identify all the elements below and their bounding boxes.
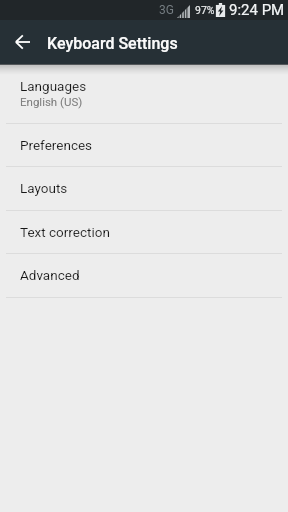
staticText: English (US) [20,95,83,108]
staticText: 9:24 PM [229,1,285,19]
staticText: Languages [20,78,87,94]
button[interactable]: Text correction [0,211,288,254]
button[interactable]: Back [1,20,43,64]
staticText: 97% [195,4,215,16]
staticText: Advanced [20,267,80,283]
staticText: 3G [159,3,174,17]
button[interactable]: Preferences [0,124,288,167]
button[interactable]: Languages [0,64,288,124]
staticText: Preferences [20,137,93,153]
staticText: Layouts [20,180,68,196]
staticText: Keyboard Settings [47,34,178,53]
button[interactable]: Layouts [0,167,288,211]
button[interactable]: Advanced [0,254,288,298]
staticText: Text correction [20,224,110,240]
